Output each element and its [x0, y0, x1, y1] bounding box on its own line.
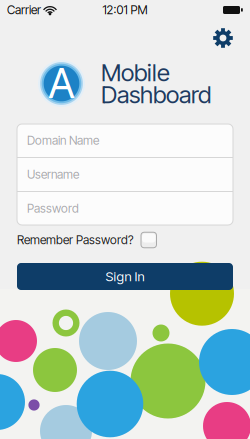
button[interactable]: Sign In [17, 263, 233, 290]
staticText: A [48, 58, 74, 108]
staticText: Domain Name [27, 133, 99, 148]
staticText: Username [27, 167, 79, 182]
staticText: Carrier [7, 3, 41, 17]
staticText: Sign In [105, 268, 144, 284]
staticText: Remember Password? [17, 233, 134, 247]
staticText: 12:01 PM [102, 3, 147, 17]
staticText: Dashboard [101, 80, 211, 109]
staticText: Mobile [101, 58, 170, 87]
staticText: Password [27, 201, 79, 216]
button[interactable]: Settings [208, 23, 238, 53]
button[interactable]: Remember Password [141, 232, 156, 248]
